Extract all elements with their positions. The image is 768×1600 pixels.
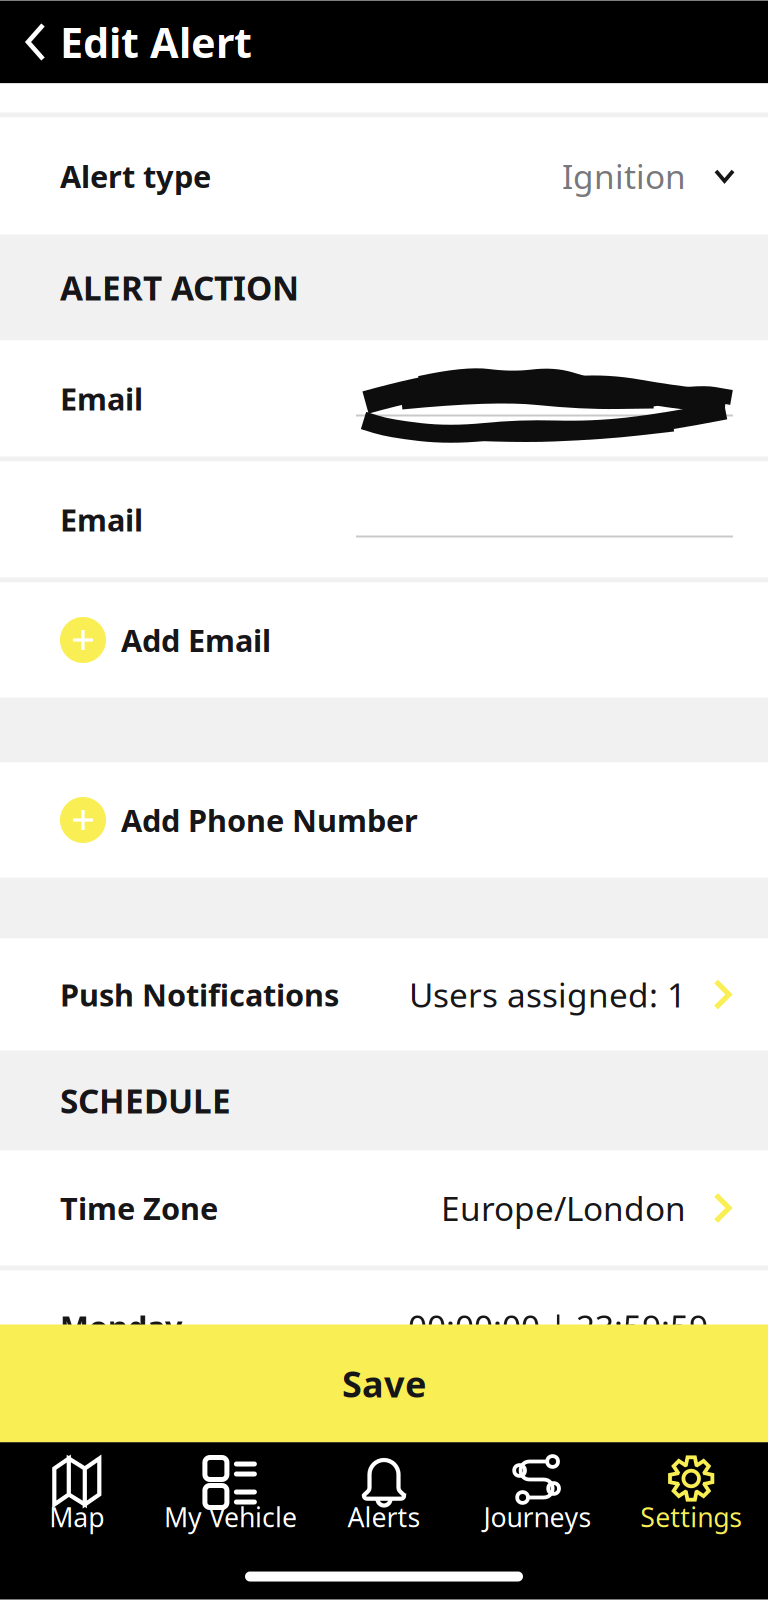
staticText: Users assigned: 1 [409, 972, 686, 1017]
staticText: Add Phone Number [121, 800, 418, 840]
button[interactable]: Alert type [0, 117, 768, 234]
staticText: My Vehicle [164, 1499, 297, 1534]
button[interactable]: My Vehicle [154, 1442, 307, 1538]
staticText: SCHEDULE [60, 1078, 231, 1123]
staticText: Ignition [562, 154, 686, 198]
staticText: 00:00:00 | 23:59:59 [408, 1304, 708, 1349]
staticText: Alerts [347, 1499, 420, 1534]
button[interactable]: Alerts [307, 1442, 461, 1538]
button[interactable]: Add Phone Number [0, 762, 768, 877]
button[interactable]: Back [0, 0, 60, 83]
staticText: Monday [60, 1306, 183, 1347]
button[interactable]: Map [0, 1442, 154, 1538]
button[interactable]: Monday [0, 1270, 768, 1382]
button[interactable]: Journeys [461, 1442, 614, 1538]
staticText: Time Zone [60, 1188, 218, 1228]
staticText: Edit Alert [60, 15, 252, 69]
button[interactable]: Settings [614, 1442, 768, 1538]
staticText: Save [342, 1360, 426, 1407]
staticText: Email [60, 499, 143, 540]
staticText: Settings [640, 1499, 742, 1534]
button[interactable]: Time Zone [0, 1150, 768, 1265]
button[interactable]: Push Notifications [0, 938, 768, 1050]
staticText: Email [60, 378, 143, 419]
staticText: Journeys [484, 1499, 592, 1534]
staticText: Push Notifications [60, 974, 339, 1015]
button[interactable]: Save [0, 1324, 768, 1442]
staticText: Add Email [121, 620, 271, 660]
staticText: Europe/London [441, 1186, 686, 1230]
staticText: ALERT ACTION [60, 265, 299, 310]
staticText: Map [49, 1499, 104, 1534]
button[interactable]: Add Email [0, 582, 768, 697]
staticText: Alert type [60, 156, 211, 196]
